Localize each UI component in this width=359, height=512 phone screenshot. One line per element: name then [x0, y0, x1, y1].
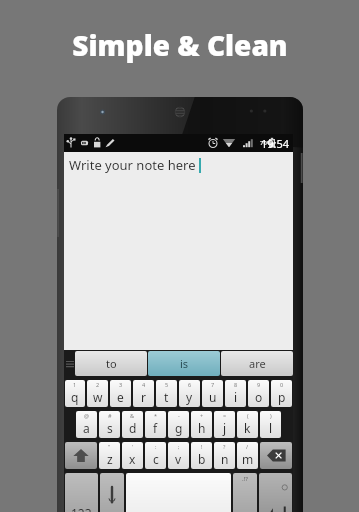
button[interactable]: 5 [156, 380, 177, 407]
staticText: 19:54 [261, 136, 290, 151]
staticText: e [117, 389, 124, 405]
button[interactable]: is [148, 351, 220, 376]
staticText: q [71, 389, 79, 405]
staticText: = [223, 412, 227, 419]
staticText: ? [223, 443, 226, 450]
staticText: c [153, 451, 159, 467]
staticText: y [186, 389, 193, 405]
staticText: x [129, 451, 136, 467]
button[interactable]: = [214, 411, 235, 438]
button[interactable]: ) [260, 411, 281, 438]
staticText: a [83, 420, 90, 436]
staticText: @ [84, 412, 89, 419]
button[interactable]: 4 [133, 380, 154, 407]
button[interactable]: are [221, 351, 293, 376]
staticText: r [141, 389, 146, 405]
staticText: s [107, 420, 113, 436]
staticText: h [198, 420, 206, 436]
staticText: o [255, 389, 263, 405]
staticText: ( [247, 412, 249, 419]
staticText: 1 [73, 381, 77, 388]
staticText: * [154, 412, 158, 419]
staticText: i [234, 389, 238, 405]
staticText: are [249, 356, 266, 371]
staticText: to [106, 356, 117, 371]
button[interactable]: Backspace [260, 442, 292, 469]
staticText: 0 [280, 381, 284, 388]
button[interactable]: : [145, 442, 166, 469]
button[interactable]: ? [214, 442, 235, 469]
staticText: w [93, 389, 103, 405]
button[interactable]: Menu [64, 350, 75, 377]
staticText: n [221, 451, 229, 467]
staticText: 123 [71, 505, 92, 512]
staticText: 9 [257, 381, 261, 388]
staticText: .!? [242, 475, 248, 483]
button[interactable]: 123 [65, 473, 98, 512]
button[interactable]: + [191, 411, 212, 438]
staticText: f [153, 420, 158, 436]
staticText: is [180, 356, 189, 371]
button[interactable]: Enter [259, 473, 292, 512]
staticText: m [242, 451, 254, 467]
button[interactable]: / [237, 442, 258, 469]
button[interactable]: 0 [271, 380, 292, 407]
staticText: p [278, 389, 286, 405]
button[interactable]: .!? [233, 473, 257, 512]
staticText: 7 [211, 381, 215, 388]
button[interactable]: to [75, 351, 147, 376]
staticText: l [269, 420, 273, 436]
button[interactable]: 3 [110, 380, 131, 407]
staticText: 70% [260, 139, 273, 147]
button[interactable]: 7 [202, 380, 223, 407]
button[interactable]: * [145, 411, 166, 438]
staticText: u [209, 389, 217, 405]
button[interactable]: & [122, 411, 143, 438]
staticText: t [164, 389, 169, 405]
staticText: " [108, 443, 111, 450]
button[interactable]: 8 [225, 380, 246, 407]
staticText: d [129, 420, 137, 436]
staticText: 2 [96, 381, 100, 388]
staticText: ) [270, 412, 272, 419]
button[interactable]: 1 [65, 380, 85, 407]
staticText: k [244, 420, 251, 436]
staticText: ! [201, 443, 203, 450]
button[interactable]: ( [237, 411, 258, 438]
staticText: + [200, 412, 204, 419]
staticText: & [130, 412, 135, 419]
staticText: Simple & Clean [72, 26, 288, 64]
staticText: / [246, 443, 249, 450]
staticText: b [198, 451, 206, 467]
staticText: 6 [188, 381, 192, 388]
staticText: Write your note here [69, 156, 196, 174]
button[interactable]: ! [191, 442, 212, 469]
button[interactable]: ' [122, 442, 143, 469]
staticText: 4 [142, 381, 146, 388]
staticText: # [108, 412, 112, 419]
staticText: g [175, 420, 183, 436]
staticText: 8 [234, 381, 238, 388]
button[interactable]: Voice input [100, 473, 124, 512]
staticText: 3 [119, 381, 123, 388]
staticText: v [175, 451, 182, 467]
staticText: ' [132, 443, 134, 450]
staticText: - [178, 412, 180, 419]
staticText: j [223, 420, 227, 436]
button[interactable]: - [168, 411, 189, 438]
staticText: 5 [165, 381, 169, 388]
button[interactable]: # [99, 411, 120, 438]
button[interactable]: Write your note here [64, 152, 293, 350]
staticText: ; [178, 443, 180, 450]
staticText: z [107, 451, 113, 467]
button[interactable]: " [99, 442, 120, 469]
button[interactable]: 9 [248, 380, 269, 407]
button[interactable]: @ [76, 411, 97, 438]
button[interactable]: Shift [65, 442, 97, 469]
button[interactable]: Space [126, 473, 231, 512]
button[interactable]: ; [168, 442, 189, 469]
staticText: : [155, 443, 157, 450]
button[interactable]: 6 [179, 380, 200, 407]
button[interactable]: 2 [87, 380, 108, 407]
